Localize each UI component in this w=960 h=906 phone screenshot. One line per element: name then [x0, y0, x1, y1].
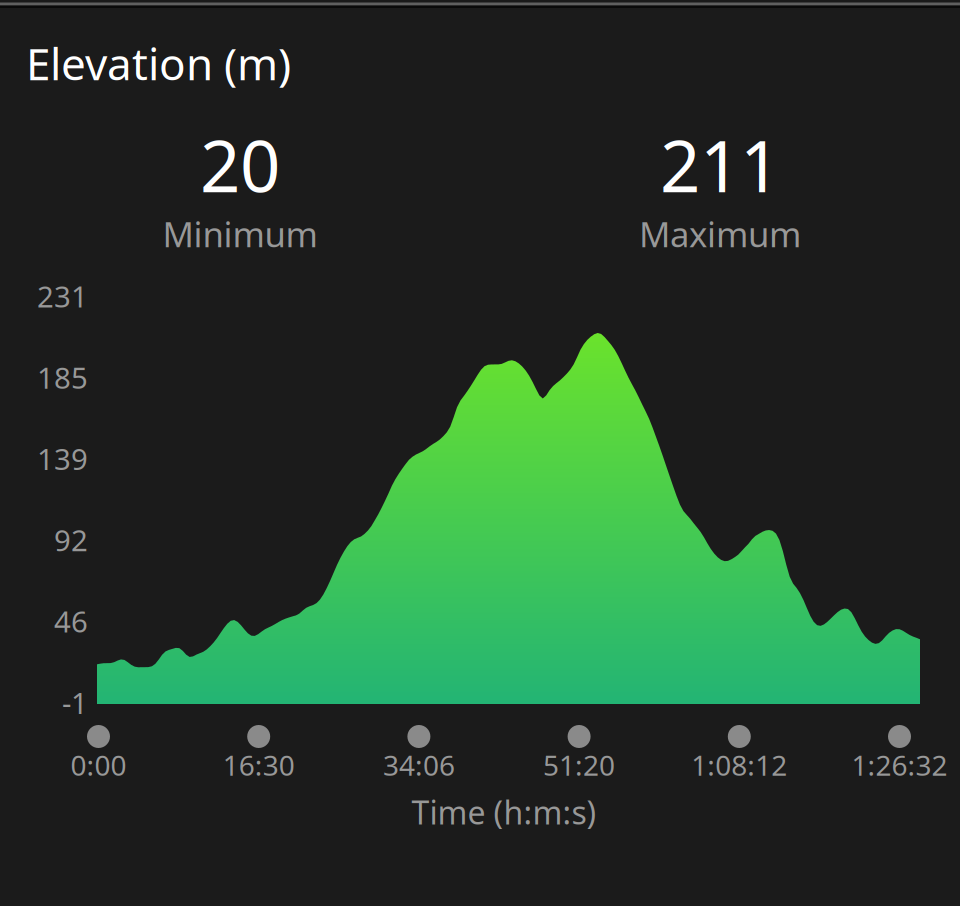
- button[interactable]: 34:06: [319, 725, 519, 779]
- button[interactable]: 16:30: [159, 725, 359, 779]
- staticText: Minimum: [162, 211, 317, 257]
- staticText: 231: [37, 276, 88, 315]
- staticText: Maximum: [639, 211, 801, 257]
- staticText: Elevation (m): [26, 34, 291, 92]
- staticText: 211: [660, 118, 780, 212]
- staticText: Time (h:m:s): [411, 791, 596, 833]
- button[interactable]: 1:26:32: [799, 725, 960, 779]
- button[interactable]: 0:00: [0, 725, 198, 779]
- staticText: 51:20: [543, 746, 615, 784]
- button[interactable]: 211: [480, 118, 960, 257]
- staticText: 185: [37, 358, 88, 397]
- staticText: 20: [200, 118, 280, 212]
- staticText: 0:00: [70, 746, 126, 784]
- button[interactable]: 51:20: [479, 725, 679, 779]
- staticText: 46: [54, 602, 88, 641]
- staticText: 92: [54, 520, 88, 559]
- button[interactable]: 20: [0, 118, 480, 257]
- staticText: 139: [37, 439, 88, 478]
- staticText: -1: [62, 683, 88, 722]
- staticText: 1:08:12: [691, 746, 787, 784]
- staticText: 1:26:32: [851, 746, 947, 784]
- button[interactable]: 1:08:12: [639, 725, 839, 779]
- staticText: 16:30: [223, 746, 295, 784]
- staticText: 34:06: [383, 746, 455, 784]
